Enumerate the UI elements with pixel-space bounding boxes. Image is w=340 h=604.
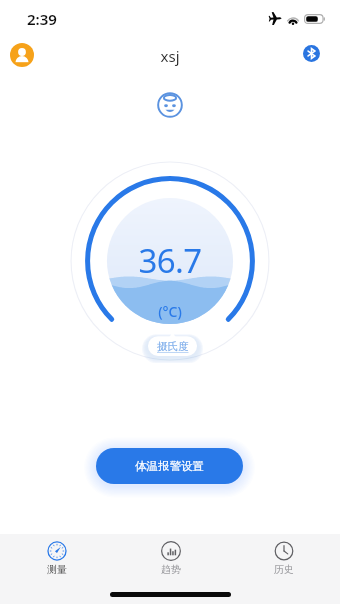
staticText: 历史: [274, 563, 294, 576]
staticText: 36.7: [0, 238, 340, 283]
button[interactable]: 趋势: [114, 537, 227, 579]
staticText: (°C): [0, 302, 340, 321]
button[interactable]: 体温报警设置: [96, 448, 243, 484]
staticText: 测量: [47, 563, 67, 576]
button[interactable]: 历史: [227, 537, 340, 579]
staticText: 体温报警设置: [135, 459, 204, 473]
button[interactable]: 测量: [0, 537, 114, 579]
button[interactable]: 摄氏度: [148, 332, 197, 356]
button[interactable]: Profile: [10, 43, 34, 67]
staticText: 摄氏度: [157, 340, 189, 353]
staticText: xsj: [0, 46, 340, 66]
button[interactable]: Bluetooth: [303, 45, 320, 62]
staticText: 2:39: [27, 9, 57, 29]
button[interactable]: Baby profile: [157, 92, 183, 118]
staticText: 趋势: [161, 563, 181, 576]
